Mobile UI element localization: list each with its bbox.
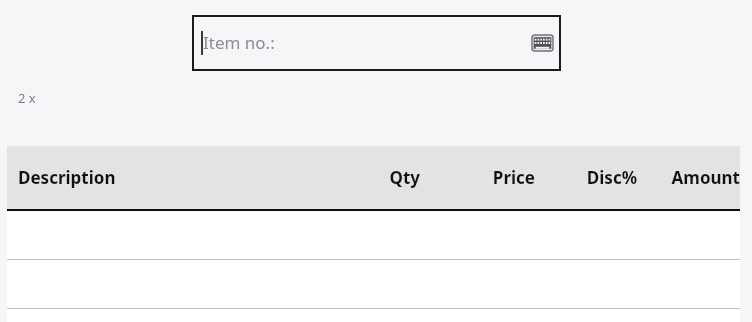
staticText: 2 x	[18, 89, 36, 107]
button[interactable]: Description	[18, 166, 207, 189]
staticText: Qty	[208, 166, 420, 189]
button[interactable]: Show keyboard	[529, 31, 555, 55]
staticText: Item no.:	[203, 31, 275, 54]
button[interactable]: Qty	[208, 166, 420, 189]
button[interactable]: Item no.:	[192, 15, 561, 71]
staticText: Description	[18, 166, 207, 189]
button[interactable]: Amount	[637, 166, 740, 189]
button[interactable]: Price	[420, 166, 535, 189]
button[interactable]: Disc%	[535, 166, 637, 189]
staticText: Amount	[637, 166, 740, 189]
staticText: Disc%	[535, 166, 637, 189]
staticText: Price	[420, 166, 535, 189]
